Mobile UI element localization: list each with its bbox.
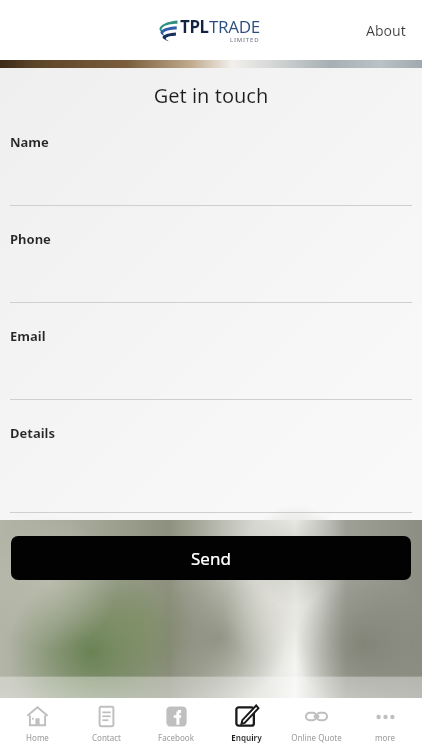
- staticText: Phone: [10, 230, 51, 248]
- staticText: Home: [26, 732, 49, 743]
- staticText: Email: [10, 327, 46, 345]
- staticText: LIMITED: [230, 36, 260, 44]
- button[interactable]: Enquiry: [213, 701, 279, 747]
- button[interactable]: More: [352, 701, 418, 747]
- staticText: Online Quote: [291, 732, 342, 743]
- other: Enquiry: [235, 705, 258, 728]
- staticText: Get in touch: [0, 82, 422, 109]
- staticText: Facebook: [158, 732, 194, 743]
- staticText: TRADE: [209, 15, 260, 38]
- button[interactable]: Online Quote: [283, 701, 349, 747]
- staticText: TPL: [180, 15, 209, 38]
- button[interactable]: Email: [0, 303, 422, 400]
- button[interactable]: Facebook: [143, 701, 209, 747]
- button[interactable]: Phone: [0, 206, 422, 303]
- button[interactable]: Home: [4, 701, 70, 747]
- other: Online Quote: [305, 705, 328, 728]
- other: More: [374, 705, 397, 728]
- other: Facebook: [165, 705, 188, 728]
- button[interactable]: About: [350, 11, 422, 50]
- staticText: Contact: [92, 732, 121, 743]
- staticText: more: [375, 732, 395, 743]
- other: Home: [26, 705, 49, 728]
- other: Contact: [95, 705, 118, 728]
- staticText: Name: [10, 133, 49, 151]
- button[interactable]: Name: [0, 109, 422, 206]
- staticText: About: [366, 21, 406, 40]
- staticText: Details: [10, 424, 55, 442]
- staticText: Send: [191, 547, 231, 570]
- button[interactable]: Contact: [73, 701, 139, 747]
- button[interactable]: Details: [0, 400, 422, 513]
- staticText: Enquiry: [231, 732, 262, 743]
- button[interactable]: Send: [11, 536, 411, 580]
